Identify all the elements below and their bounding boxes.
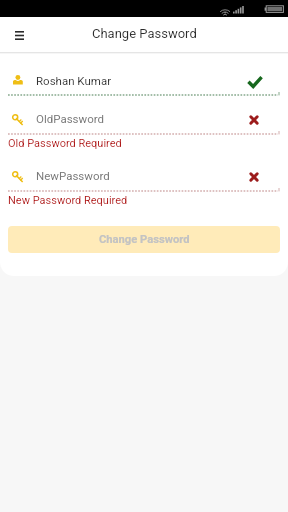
staticText: Old Password Required <box>8 137 122 150</box>
staticText: Change Password <box>99 233 190 246</box>
button[interactable]: Change Password <box>8 226 280 253</box>
staticText: OldPassword <box>36 112 104 125</box>
button[interactable]: Open navigation menu <box>7 23 31 47</box>
staticText: Change Password <box>92 26 197 41</box>
staticText: NewPassword <box>36 169 110 182</box>
staticText: New Password Required <box>8 194 128 207</box>
staticText: Roshan Kumar <box>36 74 112 87</box>
